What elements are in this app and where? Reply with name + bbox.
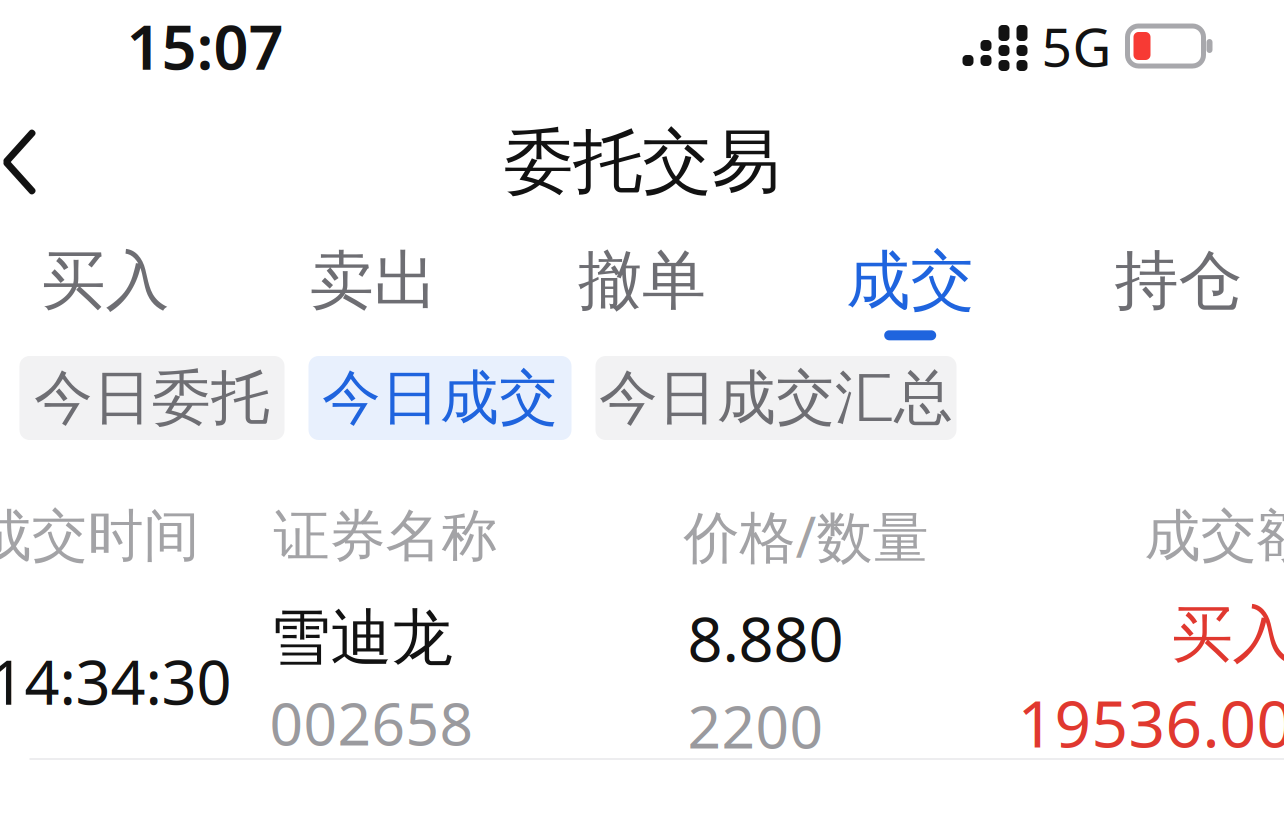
staticText: 证券名称: [273, 502, 497, 570]
staticText: 撤单: [578, 242, 706, 320]
button[interactable]: 撤单: [508, 238, 776, 344]
staticText: 持仓: [1114, 242, 1242, 320]
staticText: 14:34:30: [0, 640, 231, 722]
button[interactable]: Back: [0, 114, 67, 210]
button[interactable]: 今日委托: [19, 356, 284, 440]
button[interactable]: 买入: [0, 238, 240, 344]
staticText: 成交时间: [0, 502, 199, 570]
staticText: 今日成交: [322, 362, 558, 434]
button[interactable]: 成交: [776, 238, 1044, 344]
staticText: 002658: [269, 684, 473, 762]
staticText: 8.880: [687, 597, 843, 679]
button[interactable]: 持仓: [1044, 238, 1284, 344]
staticText: 委托交易: [504, 119, 780, 205]
staticText: 雪迪龙: [269, 600, 452, 676]
staticText: 成交: [846, 242, 974, 320]
button[interactable]: 14:34:30: [0, 604, 1284, 760]
staticText: 成交额: [1144, 502, 1284, 570]
staticText: 价格/数量: [683, 499, 928, 573]
staticText: 买入: [1171, 597, 1284, 672]
button[interactable]: 今日成交汇总: [595, 356, 956, 440]
staticText: 今日成交汇总: [599, 362, 953, 434]
staticText: 今日委托: [34, 362, 270, 434]
staticText: 卖出: [310, 242, 438, 320]
button[interactable]: 卖出: [240, 238, 508, 344]
staticText: 19536.00: [1017, 680, 1284, 765]
button[interactable]: 今日成交: [308, 356, 571, 440]
staticText: 买入: [42, 242, 170, 320]
staticText: 5G: [1041, 11, 1111, 81]
staticText: 15:07: [126, 5, 283, 87]
staticText: 2200: [687, 687, 823, 765]
